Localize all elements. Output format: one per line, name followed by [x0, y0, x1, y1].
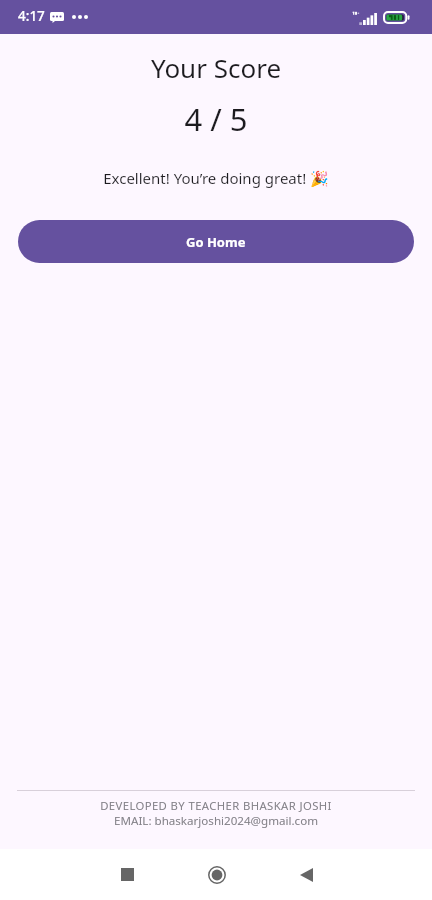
staticText: EMAIL: bhaskarjoshi2024@gmail.com [0, 813, 432, 829]
button[interactable]: Go Home [18, 220, 414, 263]
button[interactable]: Back [261, 849, 351, 900]
staticText: Go Home [186, 233, 246, 251]
staticText: Your Score [0, 50, 432, 85]
staticText: 4 / 5 [0, 98, 432, 140]
staticText: 4:17 [18, 7, 45, 25]
staticText: Excellent! You’re doing great! 🎉 [0, 168, 432, 188]
button[interactable]: Recent apps [82, 849, 172, 900]
staticText: DEVELOPED BY TEACHER BHASKAR JOSHI [0, 798, 432, 813]
button[interactable]: Home [172, 849, 261, 900]
